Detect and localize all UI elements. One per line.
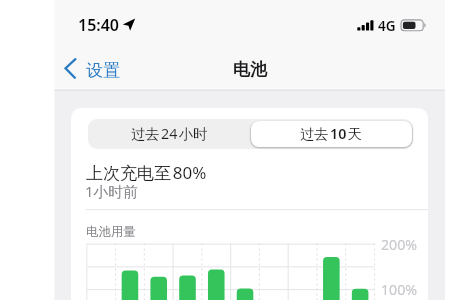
staticText: 电池用量 bbox=[86, 224, 136, 240]
staticText: 15:40 bbox=[78, 14, 120, 36]
button[interactable]: 设置 bbox=[62, 53, 120, 85]
staticText: 上次充电至 80% bbox=[86, 161, 207, 184]
button[interactable]: 过去 24 小时 bbox=[88, 119, 250, 149]
button[interactable]: 过去 10 天 bbox=[251, 121, 412, 147]
staticText: 过去 10 天 bbox=[300, 124, 363, 144]
staticText: 200% bbox=[381, 235, 418, 254]
staticText: 电池 bbox=[233, 59, 267, 80]
staticText: 4G bbox=[378, 17, 396, 35]
staticText: 设置 bbox=[86, 60, 120, 81]
staticText: 过去 24 小时 bbox=[131, 124, 208, 144]
staticText: 1小时前 bbox=[85, 181, 138, 201]
staticText: 100% bbox=[381, 280, 418, 299]
